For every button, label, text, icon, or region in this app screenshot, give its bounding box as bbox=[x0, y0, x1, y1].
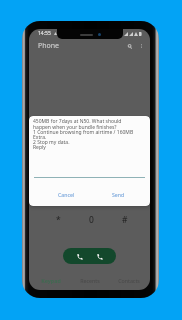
button[interactable]: Call bbox=[63, 248, 116, 264]
button[interactable]: # bbox=[108, 214, 141, 228]
staticText: * bbox=[56, 214, 61, 226]
button[interactable]: Send bbox=[103, 188, 133, 200]
staticText: # bbox=[122, 214, 128, 226]
button[interactable]: Search bbox=[125, 41, 135, 51]
staticText: Recents bbox=[80, 277, 100, 284]
staticText: Keypad bbox=[41, 277, 61, 284]
button[interactable]: Cancel bbox=[51, 188, 81, 200]
button[interactable]: More options bbox=[136, 41, 146, 51]
staticText: Cancel bbox=[58, 191, 75, 198]
staticText: 0 bbox=[89, 214, 94, 226]
staticText: 14:55 bbox=[38, 30, 51, 37]
button[interactable]: * bbox=[42, 214, 75, 228]
staticText: Send bbox=[112, 191, 125, 198]
button[interactable]: Keypad bbox=[32, 274, 70, 286]
button[interactable]: 0 bbox=[75, 214, 108, 228]
button[interactable]: Contacts bbox=[109, 274, 148, 286]
staticText: 450MB for 7days at N50. What should happ… bbox=[33, 118, 134, 151]
staticText: Phone bbox=[38, 41, 60, 51]
staticText: Contacts bbox=[118, 277, 140, 284]
